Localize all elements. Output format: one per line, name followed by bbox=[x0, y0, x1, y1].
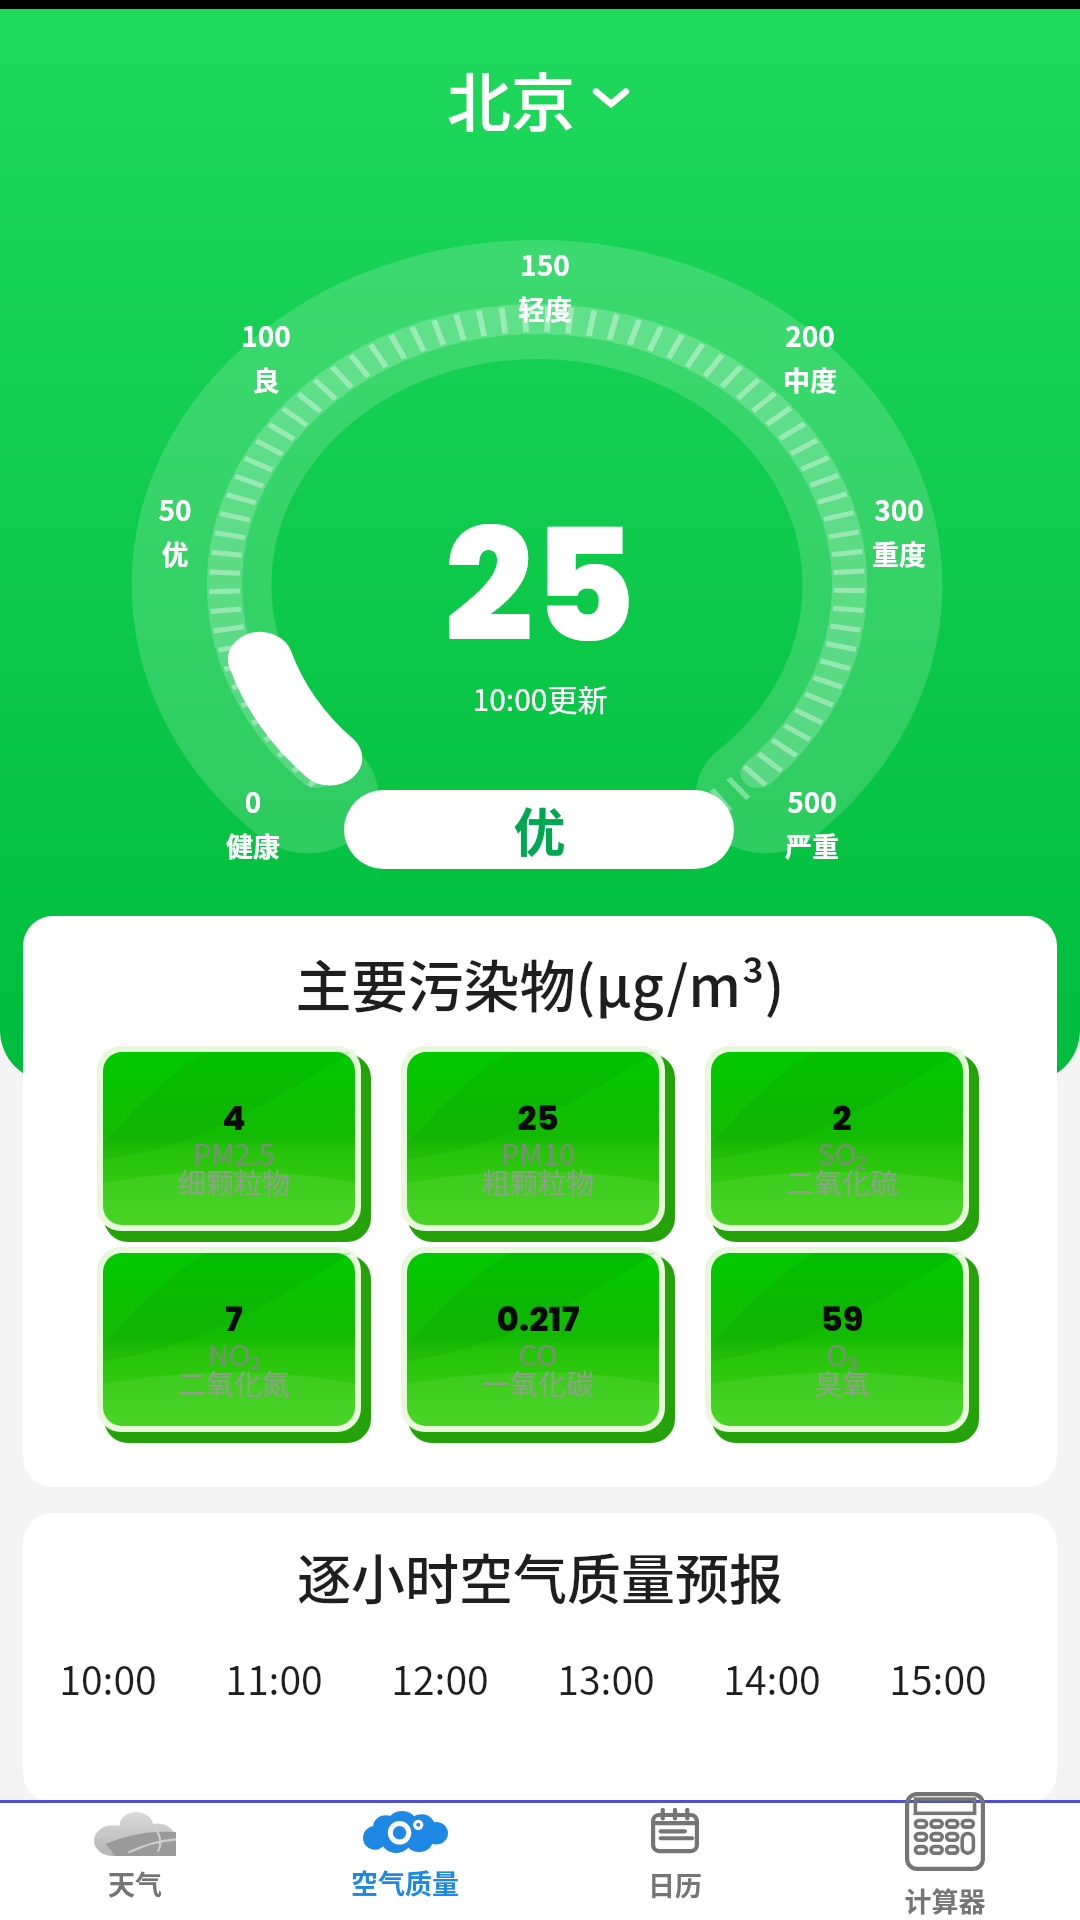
staticText: 空气质量 bbox=[270, 1863, 540, 1902]
staticText: SO₂ bbox=[705, 1131, 979, 1173]
staticText: 严重 bbox=[722, 826, 902, 865]
staticText: 细颗粒物 bbox=[97, 1162, 371, 1203]
other: 天气 bbox=[94, 1812, 176, 1856]
button[interactable]: 4 bbox=[97, 1046, 371, 1242]
staticText: 优 bbox=[513, 792, 566, 867]
staticText: 逐小时空气质量预报 bbox=[23, 1537, 1057, 1615]
staticText: 150 bbox=[455, 244, 635, 285]
button[interactable]: 空气质量 bbox=[270, 1803, 540, 1920]
staticText: PM10 bbox=[401, 1131, 675, 1173]
other: 日历 bbox=[651, 1809, 699, 1852]
button[interactable]: 59 bbox=[705, 1247, 979, 1443]
staticText: 北京 bbox=[447, 52, 575, 140]
button[interactable]: 日历 bbox=[540, 1803, 810, 1920]
staticText: 7 bbox=[97, 1295, 371, 1343]
staticText: 中度 bbox=[720, 360, 900, 399]
staticText: 200 bbox=[720, 315, 900, 356]
staticText: 天气 bbox=[0, 1864, 270, 1903]
staticText: 重度 bbox=[809, 534, 989, 573]
staticText: 主要污染物(μg/m³) bbox=[23, 942, 1057, 1023]
staticText: 一氧化碳 bbox=[401, 1363, 675, 1404]
staticText: 二氧化硫 bbox=[705, 1162, 979, 1203]
other: 计算器 bbox=[905, 1792, 985, 1871]
staticText: O₃ bbox=[705, 1332, 979, 1374]
button[interactable]: 25 bbox=[401, 1046, 675, 1242]
other: 空气质量 bbox=[363, 1811, 448, 1853]
staticText: 计算器 bbox=[810, 1881, 1080, 1920]
staticText: 100 bbox=[176, 315, 356, 356]
staticText: 13:00 bbox=[526, 1650, 686, 1706]
staticText: 0 bbox=[163, 781, 343, 822]
button[interactable]: 7 bbox=[97, 1247, 371, 1443]
staticText: 500 bbox=[722, 781, 902, 822]
staticText: 59 bbox=[705, 1295, 979, 1343]
staticText: 2 bbox=[705, 1094, 979, 1142]
staticText: 0.217 bbox=[401, 1295, 675, 1343]
staticText: 10:00 bbox=[28, 1650, 188, 1706]
button[interactable]: 2 bbox=[705, 1046, 979, 1242]
staticText: 二氧化氮 bbox=[97, 1363, 371, 1404]
button[interactable]: 北京 bbox=[0, 52, 1080, 140]
staticText: PM2.5 bbox=[97, 1131, 371, 1173]
staticText: NO₂ bbox=[97, 1332, 371, 1374]
staticText: 25 bbox=[401, 1094, 675, 1142]
staticText: 300 bbox=[809, 489, 989, 530]
button[interactable]: 0.217 bbox=[401, 1247, 675, 1443]
staticText: 11:00 bbox=[194, 1650, 354, 1706]
staticText: 良 bbox=[176, 360, 356, 399]
staticText: 日历 bbox=[540, 1865, 810, 1904]
staticText: 14:00 bbox=[692, 1650, 852, 1706]
staticText: CO bbox=[401, 1332, 675, 1374]
button[interactable]: 计算器 bbox=[810, 1803, 1080, 1920]
staticText: 粗颗粒物 bbox=[401, 1162, 675, 1203]
staticText: 臭氧 bbox=[705, 1363, 979, 1404]
staticText: 12:00 bbox=[360, 1650, 520, 1706]
staticText: 50 bbox=[85, 489, 265, 530]
button[interactable]: 天气 bbox=[0, 1803, 270, 1920]
button[interactable]: 优 bbox=[344, 790, 734, 869]
staticText: 轻度 bbox=[455, 289, 635, 328]
staticText: 10:00更新 bbox=[0, 676, 1080, 719]
staticText: 健康 bbox=[163, 826, 343, 865]
staticText: 25 bbox=[0, 477, 1080, 695]
staticText: 15:00 bbox=[858, 1650, 1018, 1706]
staticText: 4 bbox=[97, 1094, 371, 1142]
staticText: 优 bbox=[85, 534, 265, 573]
